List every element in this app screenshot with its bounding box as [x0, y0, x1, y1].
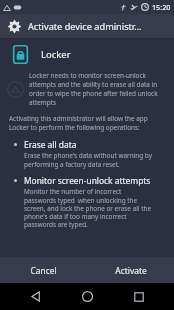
button[interactable]: Recent apps	[122, 283, 156, 310]
staticText: Activating this administrator will allow…	[9, 114, 148, 131]
staticText: Monitor screen-unlock attempts	[24, 175, 151, 186]
staticText: Erase the phone's data without warning b…	[24, 151, 152, 168]
staticText: Activate	[115, 265, 147, 276]
staticText: Monitor the number of incorrect password…	[24, 187, 152, 228]
staticText: Locker	[41, 48, 71, 61]
button[interactable]: Activate	[87, 258, 174, 283]
staticText: Erase all data	[24, 139, 77, 150]
button[interactable]: Home	[70, 283, 104, 310]
staticText: Locker needs to monitor screen-unlock at…	[29, 71, 158, 107]
button[interactable]: Back	[18, 283, 52, 310]
staticText: Cancel	[30, 265, 57, 276]
button[interactable]: Monitor screen-unlock attempts	[14, 175, 169, 228]
button[interactable]: Settings	[7, 19, 22, 34]
staticText: Activate device administr…	[28, 20, 142, 33]
staticText: 15:20	[152, 2, 171, 12]
button[interactable]: Erase all data	[14, 139, 169, 168]
button[interactable]: Cancel	[0, 258, 87, 283]
